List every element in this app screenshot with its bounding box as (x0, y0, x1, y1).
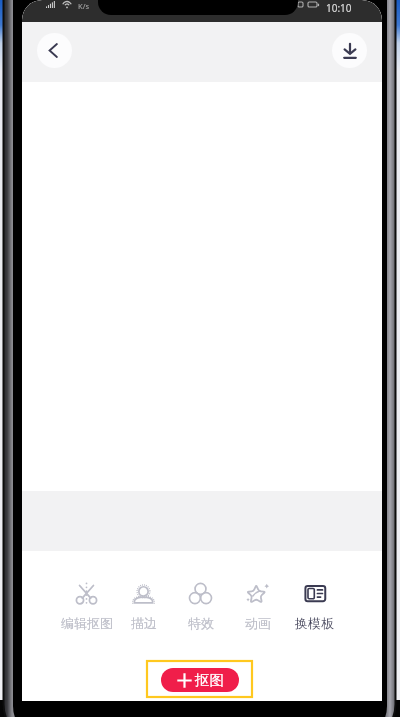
staticText: 特效 (188, 615, 214, 631)
button[interactable]: 抠图 (161, 668, 239, 692)
button[interactable]: 动画 (229, 581, 286, 631)
button[interactable]: 换模板 (286, 581, 343, 631)
staticText: 动画 (245, 615, 271, 631)
button[interactable]: Back (37, 33, 72, 68)
staticText: 编辑抠图 (61, 615, 113, 631)
button[interactable]: 描边 (115, 581, 172, 631)
staticText: 换模板 (295, 615, 334, 631)
button[interactable]: 特效 (172, 581, 229, 631)
staticText: K/s (78, 1, 90, 11)
staticText: 抠图 (195, 671, 224, 689)
button[interactable]: Download (332, 33, 367, 68)
staticText: 描边 (131, 615, 157, 631)
staticText: 10:10 (326, 1, 352, 15)
button[interactable]: 编辑抠图 (58, 581, 115, 631)
